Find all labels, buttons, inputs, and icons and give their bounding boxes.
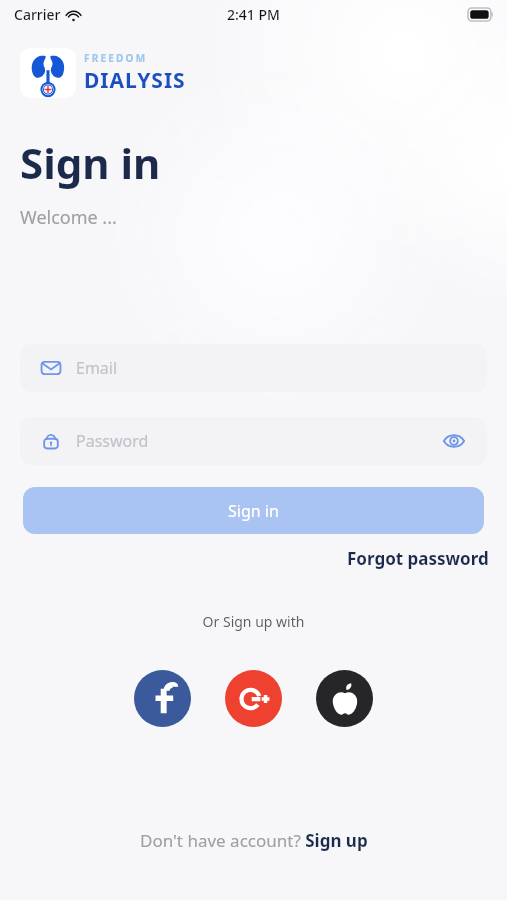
button[interactable]: Password — [20, 417, 487, 465]
button[interactable]: Email — [20, 344, 487, 392]
staticText: Forgot password — [347, 547, 489, 570]
button[interactable]: Sign in with Google — [225, 670, 282, 727]
button[interactable]: Forgot password — [347, 547, 489, 570]
staticText: 2:41 PM — [227, 5, 280, 24]
staticText: Email — [76, 357, 118, 379]
staticText: Carrier — [14, 5, 61, 24]
staticText: Don't have account? Sign up — [140, 829, 368, 852]
button[interactable]: Sign in with Apple — [316, 670, 373, 727]
button[interactable]: Sign in with Facebook — [134, 670, 191, 727]
staticText: Welcome ... — [20, 205, 117, 230]
staticText: Sign in — [20, 134, 161, 191]
button[interactable]: Sign in — [23, 487, 484, 534]
button[interactable]: Don't have account? Sign up — [0, 829, 507, 900]
staticText: Password — [76, 430, 149, 452]
staticText: Sign in — [228, 500, 279, 522]
button[interactable]: Show password — [441, 428, 467, 454]
staticText: DIALYSIS — [84, 66, 186, 95]
staticText: FREEDOM — [84, 51, 148, 65]
staticText: Or Sign up with — [0, 612, 507, 631]
